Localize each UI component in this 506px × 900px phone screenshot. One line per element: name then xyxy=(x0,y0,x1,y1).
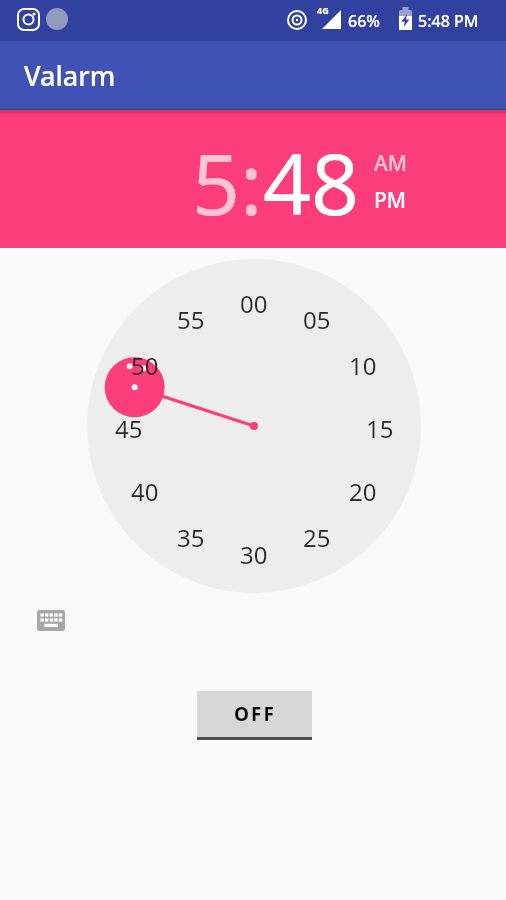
staticText: 10 xyxy=(349,349,377,377)
staticText: 66% xyxy=(348,10,380,32)
button[interactable]: 55 xyxy=(171,303,211,331)
button[interactable] xyxy=(30,602,72,638)
staticText: Valarm xyxy=(24,57,116,94)
staticText: 45 xyxy=(115,412,143,440)
button[interactable]: 5: xyxy=(192,125,263,239)
button[interactable]: 48 xyxy=(263,125,360,239)
button[interactable]: 40 xyxy=(125,475,165,503)
button[interactable]: PM xyxy=(374,186,407,215)
button[interactable]: 10 xyxy=(343,349,383,377)
staticText: 50 xyxy=(131,349,159,377)
staticText: 4G xyxy=(317,4,329,16)
staticText: 35 xyxy=(177,521,205,549)
button[interactable]: AM xyxy=(374,149,408,178)
button[interactable]: 30 xyxy=(234,538,274,566)
staticText: 55 xyxy=(177,303,205,331)
staticText: OFF xyxy=(234,701,276,727)
staticText: 00 xyxy=(240,287,268,315)
button[interactable]: 25 xyxy=(297,521,337,549)
button[interactable]: 05 xyxy=(297,303,337,331)
button[interactable]: 00 xyxy=(234,287,274,315)
button[interactable]: 45 xyxy=(109,412,149,440)
staticText: 25 xyxy=(303,521,331,549)
staticText: 05 xyxy=(303,303,331,331)
staticText: 5:48 PM xyxy=(418,10,479,32)
button[interactable]: 35 xyxy=(171,521,211,549)
staticText: 30 xyxy=(240,538,268,566)
staticText: 15 xyxy=(366,412,394,440)
button[interactable]: 15 xyxy=(360,412,400,440)
button[interactable]: 20 xyxy=(343,475,383,503)
staticText: 20 xyxy=(349,475,377,503)
button[interactable]: 50 xyxy=(125,349,165,377)
button[interactable]: OFF xyxy=(197,691,312,737)
staticText: 40 xyxy=(131,475,159,503)
